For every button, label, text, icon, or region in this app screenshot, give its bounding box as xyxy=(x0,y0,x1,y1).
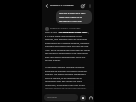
staticText: avec des glaces gigantesques qu'ils ont xyxy=(45,56,86,59)
staticText: américaines et la langue anglaise, décid… xyxy=(45,42,90,45)
staticText: uniformes, provoquant des rires et des xyxy=(45,84,85,87)
button[interactable]: Message xyxy=(44,94,78,101)
staticText: lesques. Les glaces fondent rapidement xyxy=(45,73,86,76)
staticText: York. Ils ne comprennent pas bien les ta… xyxy=(45,49,90,52)
button[interactable]: Back xyxy=(43,2,50,9)
staticText: La situation devient comique lorsqu'ils xyxy=(45,66,85,69)
staticText: Dans le film « Le Gendarme à New York », xyxy=(45,31,90,34)
staticText: des portions américaines et se retrouven… xyxy=(45,52,88,55)
button[interactable]: quel est le pays de la plus claire une o… xyxy=(56,10,92,24)
staticText: quel est le pays de la plus claire une o… xyxy=(59,12,89,22)
staticText: Réflexion durant 7 secondes xyxy=(50,27,81,30)
staticText: Message xyxy=(47,95,57,98)
staticText: il y a une scène humoristique où les gen… xyxy=(45,35,92,38)
button[interactable]: Stop xyxy=(80,95,86,101)
staticText: d'acheter des glaces dans les rues de Ne… xyxy=(45,45,89,48)
button[interactable]: More options xyxy=(86,2,93,9)
staticText: essayent de manger ces glaces rocambo- xyxy=(45,70,88,73)
staticText: ChatGPT 4.1 preview xyxy=(50,3,74,6)
staticText: regards amusés de la part des passants. xyxy=(45,87,87,90)
button[interactable]: Voice mode xyxy=(88,95,93,100)
staticText: sous la chaleur, et les gendarmes se xyxy=(45,77,82,80)
button[interactable]: New chat xyxy=(79,2,86,9)
staticText: du mal à gérer. xyxy=(45,59,61,62)
staticText: retrouvent avec des taches sur leurs xyxy=(45,80,83,83)
staticText: français, peu familiers avec les coutume… xyxy=(45,38,88,41)
